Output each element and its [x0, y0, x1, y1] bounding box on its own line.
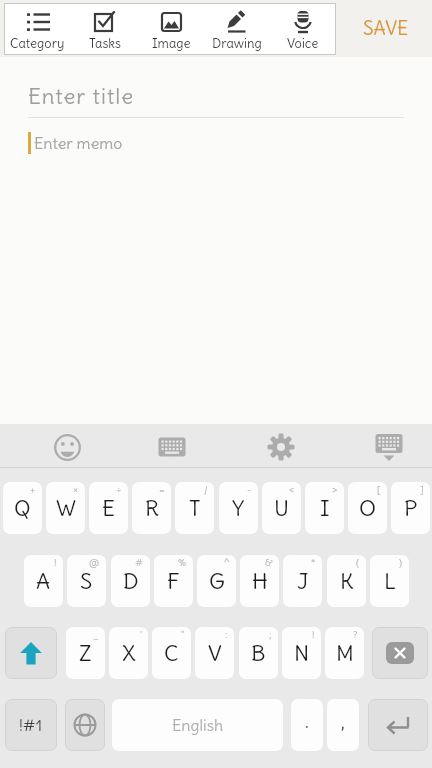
button[interactable]	[372, 627, 428, 679]
staticText: E	[102, 494, 115, 522]
staticText: ^	[224, 556, 230, 569]
staticText: '	[140, 628, 142, 641]
button[interactable]: P	[391, 482, 430, 534]
staticText: %	[178, 556, 187, 569]
button[interactable]: Tasks	[71, 3, 138, 55]
staticText: ÷	[116, 483, 122, 496]
button[interactable]: H	[240, 555, 279, 607]
staticText: (	[356, 556, 360, 569]
staticText: -	[247, 483, 252, 496]
staticText: T	[189, 494, 201, 522]
staticText: Y	[232, 494, 245, 522]
button[interactable]: Y	[219, 482, 258, 534]
staticText: Tasks	[89, 35, 121, 51]
staticText: X	[122, 639, 136, 667]
staticText: S	[80, 567, 93, 595]
button[interactable]: Enter title	[28, 82, 135, 110]
staticText: _	[93, 628, 99, 641]
button[interactable]: S	[67, 555, 106, 607]
staticText: !#1	[19, 715, 43, 735]
button[interactable]: Voice	[270, 3, 336, 55]
staticText: F	[167, 567, 180, 595]
button[interactable]	[40, 432, 94, 462]
button[interactable]: B	[239, 627, 278, 679]
button[interactable]: ,	[327, 699, 359, 751]
staticText: Category	[10, 35, 65, 51]
staticText: H	[252, 567, 268, 595]
button[interactable]: D	[111, 555, 150, 607]
button[interactable]: Category	[4, 3, 71, 55]
button[interactable]: X	[109, 627, 148, 679]
staticText: "	[181, 628, 185, 641]
staticText: .	[305, 710, 309, 733]
staticText: =	[159, 483, 165, 496]
button[interactable]: Enter memo	[34, 133, 123, 153]
button[interactable]: Drawing	[204, 3, 270, 55]
staticText: >	[332, 483, 338, 496]
button[interactable]: .	[291, 699, 323, 751]
staticText: W	[56, 494, 76, 522]
button[interactable]: M	[325, 627, 364, 679]
button[interactable]	[65, 699, 105, 751]
staticText: <	[289, 483, 295, 496]
staticText: P	[404, 494, 418, 522]
staticText: &	[265, 556, 273, 569]
button[interactable]: F	[154, 555, 193, 607]
staticText: SAVE	[363, 16, 409, 40]
staticText: Image	[152, 35, 191, 51]
staticText: Drawing	[212, 35, 262, 51]
staticText: !	[54, 556, 57, 569]
button[interactable]: W	[46, 482, 85, 534]
button[interactable]: Q	[3, 482, 42, 534]
staticText: M	[336, 639, 354, 667]
staticText: N	[294, 639, 310, 667]
staticText: !	[312, 628, 315, 641]
staticText: I	[320, 494, 330, 522]
staticText: ?	[353, 628, 358, 641]
staticText: +	[30, 483, 36, 496]
staticText: G	[209, 567, 225, 595]
staticText: C	[164, 639, 179, 667]
staticText: Z	[79, 639, 92, 667]
button[interactable]	[145, 432, 199, 462]
button[interactable]: A	[24, 555, 63, 607]
button[interactable]	[368, 699, 428, 751]
button[interactable]: English	[112, 699, 283, 751]
staticText: ;	[269, 628, 272, 641]
button[interactable]: U	[262, 482, 301, 534]
staticText: J	[297, 567, 309, 595]
button[interactable]: N	[282, 627, 321, 679]
button[interactable]: SAVE	[346, 8, 426, 48]
staticText: L	[384, 567, 396, 595]
staticText: A	[36, 567, 51, 595]
button[interactable]: E	[89, 482, 128, 534]
staticText: [	[377, 483, 381, 496]
button[interactable]: G	[197, 555, 236, 607]
button[interactable]: I	[305, 482, 344, 534]
staticText: Voice	[287, 35, 319, 51]
button[interactable]: !#1	[5, 699, 57, 751]
staticText: U	[274, 494, 290, 522]
button[interactable]: Z	[66, 627, 105, 679]
staticText: R	[145, 494, 159, 522]
staticText: V	[208, 639, 222, 667]
staticText: ,	[341, 710, 345, 733]
staticText: #	[135, 556, 144, 569]
staticText: ]	[420, 483, 424, 496]
button[interactable]: C	[152, 627, 191, 679]
button[interactable]: O	[348, 482, 387, 534]
staticText: @	[89, 556, 100, 569]
button[interactable]: R	[132, 482, 171, 534]
button[interactable]	[5, 627, 57, 679]
button[interactable]: V	[195, 627, 234, 679]
staticText: D	[123, 567, 139, 595]
button[interactable]: J	[283, 555, 322, 607]
button[interactable]: T	[175, 482, 214, 534]
button[interactable]: K	[327, 555, 366, 607]
staticText: O	[359, 494, 377, 522]
button[interactable]	[254, 432, 308, 462]
button[interactable]: Image	[138, 3, 204, 55]
staticText: English	[172, 715, 224, 735]
button[interactable]: L	[370, 555, 409, 607]
button[interactable]	[362, 432, 416, 462]
